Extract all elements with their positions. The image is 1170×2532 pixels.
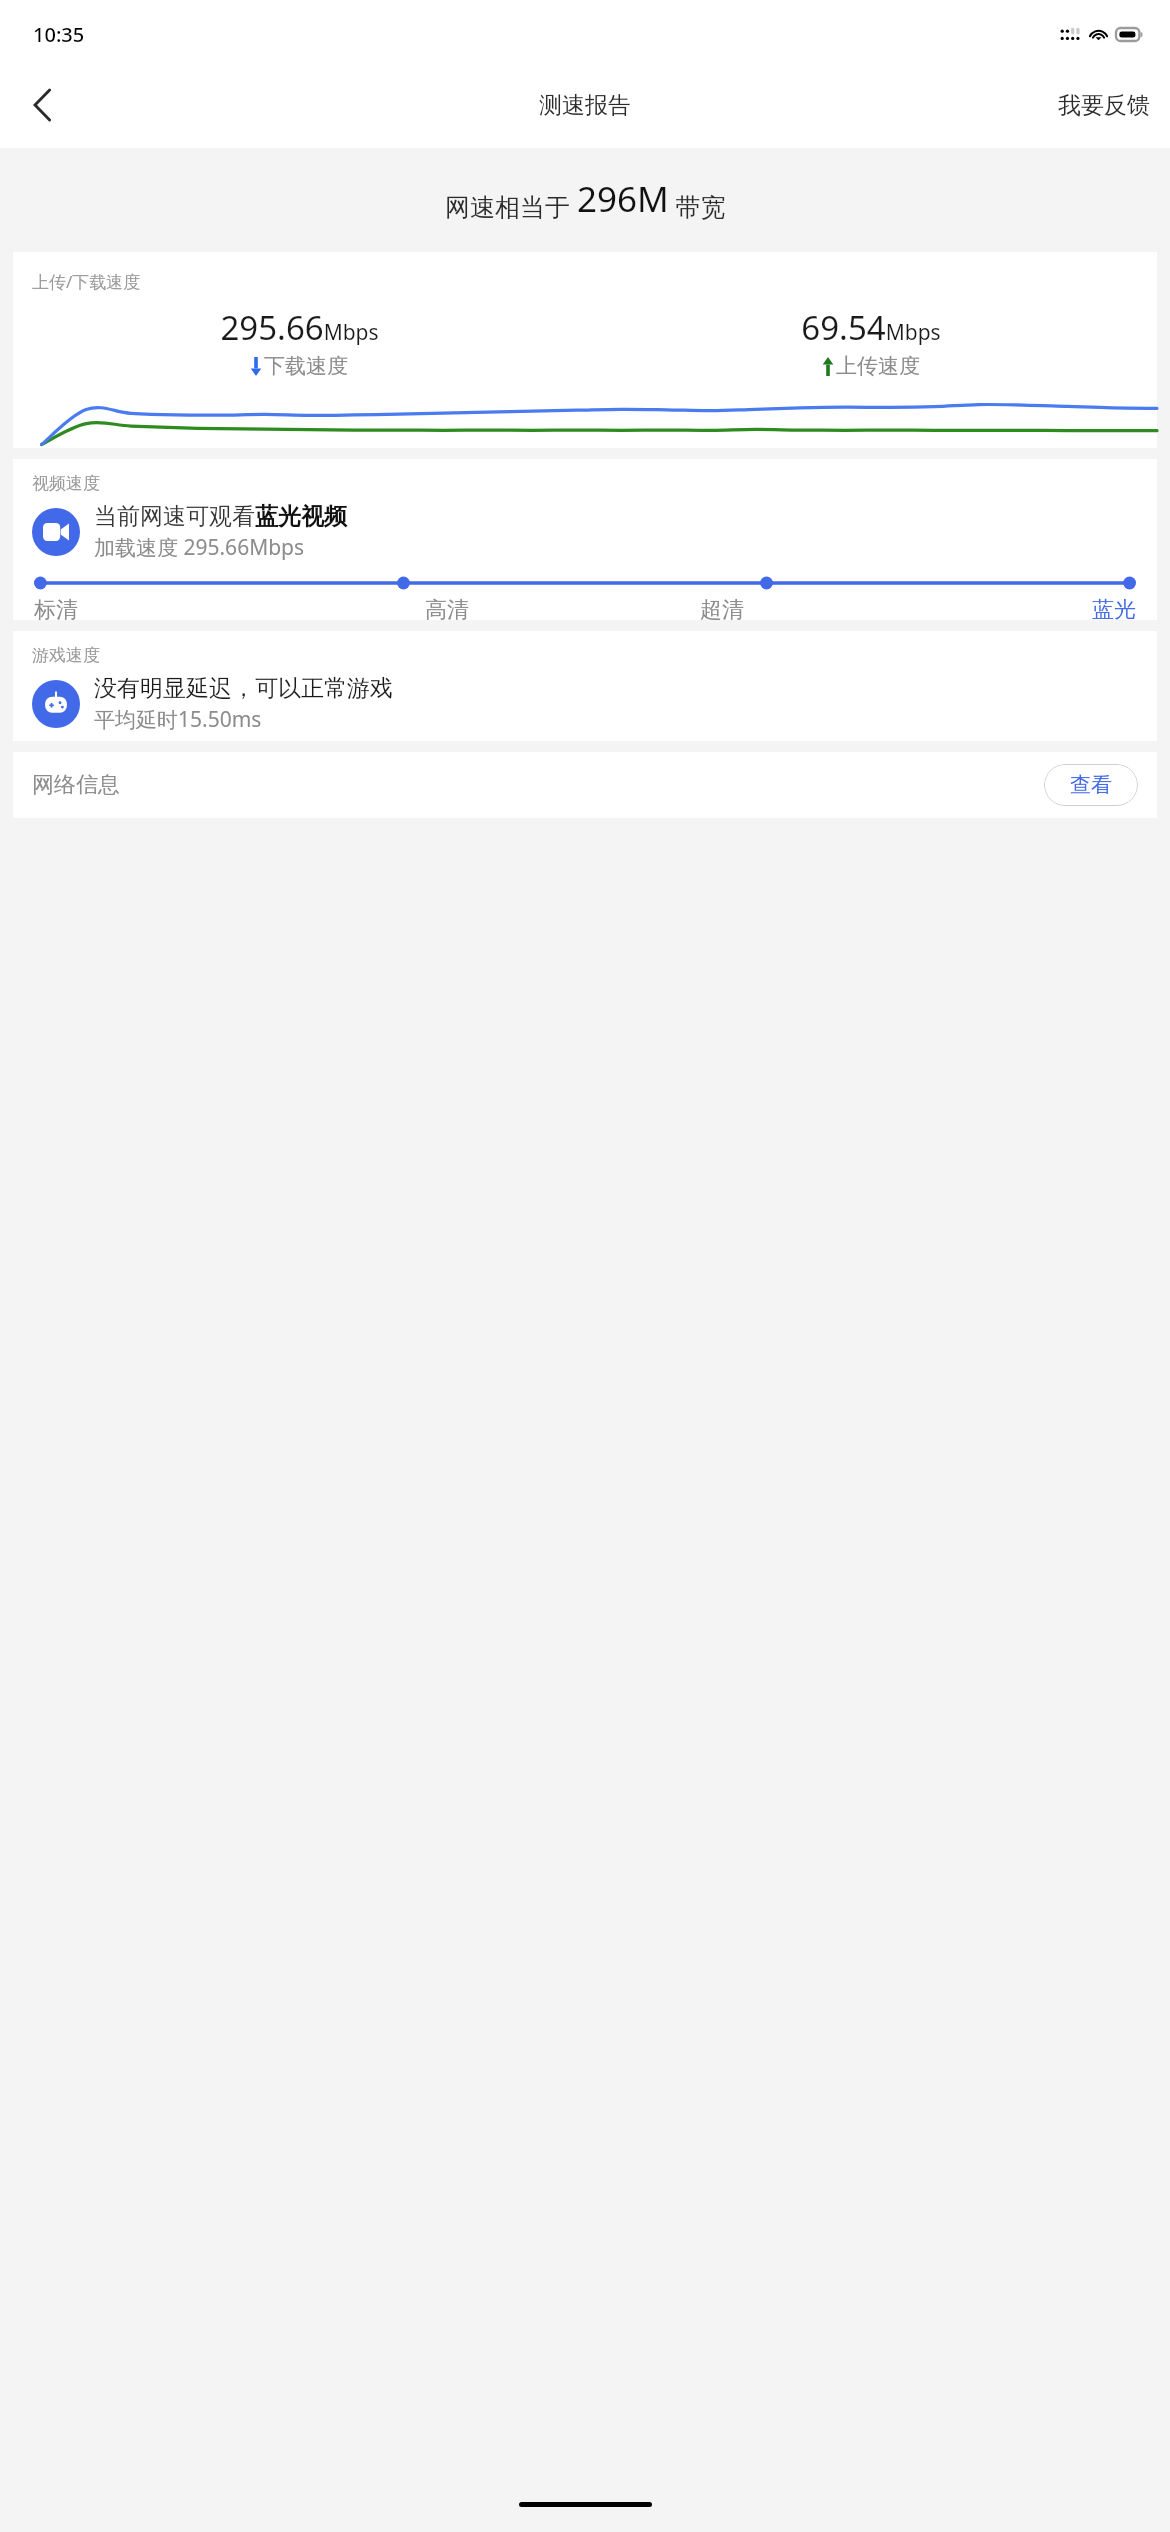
staticText: 296M [577,175,669,223]
button[interactable]: 查看 [1044,764,1138,806]
staticText: 网络信息 [32,771,120,799]
staticText: 高清 [425,596,469,620]
staticText: 超清 [700,596,744,620]
staticText: 下载速度 [264,353,348,379]
button[interactable]: 游戏速度 [13,631,1157,741]
staticText: 当前网速可观看蓝光视频 [94,502,347,531]
staticText: 没有明显延迟，可以正常游戏 [94,674,393,703]
staticText: 平均延时15.50ms [94,705,262,734]
staticText: 69.54Mbps [801,305,941,350]
staticText: 10:35 [33,21,85,48]
staticText: 游戏速度 [32,645,100,666]
staticText: 我要反馈 [1058,91,1150,120]
staticText: 标清 [34,596,78,620]
staticText: 测速报告 [539,91,631,120]
staticText: 带宽 [669,189,726,223]
staticText: 网速相当于 [445,189,577,223]
staticText: 蓝光 [1092,596,1136,620]
staticText: 视频速度 [32,473,100,494]
button[interactable]: 高清 [309,596,584,620]
staticText: 295.66Mbps [220,305,379,350]
button[interactable]: 标清 [34,596,309,620]
button[interactable]: 蓝光 [860,596,1136,620]
button[interactable]: 视频速度 [13,459,1157,620]
staticText: 查看 [1070,772,1112,798]
staticText: 加载速度 295.66Mbps [94,533,305,562]
staticText: 上传速度 [836,353,920,379]
staticText: 上传/下载速度 [32,270,141,293]
button[interactable]: 超清 [584,596,860,620]
button[interactable]: 我要反馈 [1038,79,1170,132]
button[interactable]: Back [10,73,74,137]
